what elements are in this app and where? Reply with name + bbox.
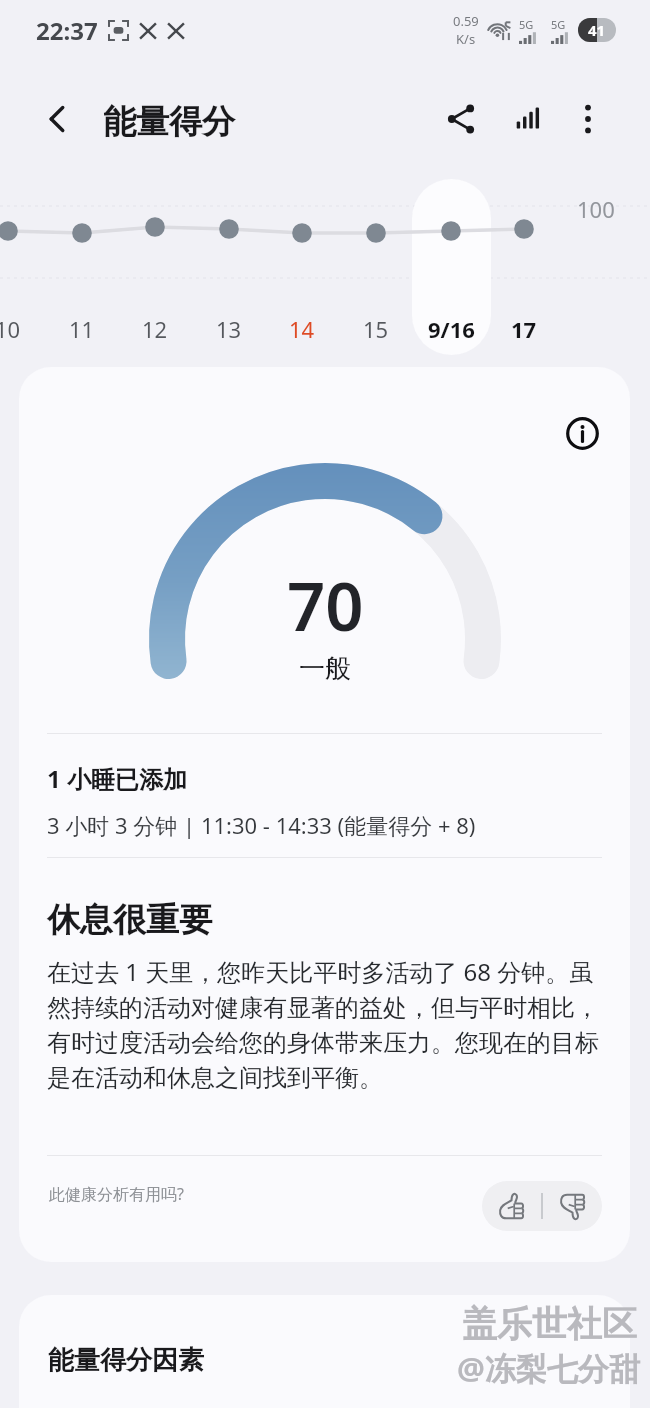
- staticText: 在过去 1 天里，您昨天比平时多活动了 68 分钟。虽 然持续的活动对健康有显著…: [47, 955, 630, 1093]
- staticText: 9/16: [428, 314, 475, 344]
- button[interactable]: Thumbs down, not helpful: [543, 1181, 602, 1231]
- staticText: 5G: [519, 17, 534, 32]
- staticText: 10: [0, 314, 21, 344]
- staticText: 41: [588, 20, 606, 40]
- button[interactable]: [412, 179, 491, 355]
- staticText: 70: [287, 559, 364, 650]
- button[interactable]: 11: [48, 310, 116, 348]
- staticText: 休息很重要: [47, 899, 212, 941]
- staticText: 14: [289, 314, 315, 344]
- staticText: 13: [216, 314, 242, 344]
- button[interactable]: More options: [563, 94, 613, 144]
- staticText: 能量得分: [103, 101, 235, 143]
- staticText: 一般: [299, 652, 351, 685]
- button[interactable]: 13: [195, 310, 263, 348]
- button[interactable]: Info: [560, 411, 604, 455]
- button[interactable]: Share: [436, 94, 486, 144]
- staticText: 12: [142, 314, 168, 344]
- staticText: 能量得分因素: [48, 1344, 204, 1377]
- staticText: 100: [577, 194, 615, 224]
- staticText: 17: [511, 314, 537, 344]
- staticText: 5G: [551, 17, 566, 32]
- button[interactable]: 10: [0, 310, 42, 348]
- button[interactable]: 17: [490, 310, 558, 348]
- button[interactable]: 能量得分因素: [19, 1295, 630, 1408]
- button[interactable]: Thumbs up, helpful: [482, 1181, 541, 1231]
- button[interactable]: 15: [342, 310, 410, 348]
- button[interactable]: 12: [121, 310, 189, 348]
- staticText: 盖乐世社区: [462, 1302, 637, 1346]
- staticText: K/s: [456, 30, 476, 48]
- staticText: 0.59: [453, 12, 479, 30]
- staticText: 3 小时 3 分钟 | 11:30 - 14:33 (能量得分 + 8): [47, 810, 476, 840]
- staticText: 15: [363, 314, 389, 344]
- button[interactable]: 14: [268, 310, 336, 348]
- staticText: 22:37: [36, 14, 98, 47]
- button[interactable]: Chart: [504, 94, 554, 144]
- staticText: 1 小睡已添加: [47, 762, 187, 795]
- staticText: @冻梨七分甜: [457, 1347, 640, 1389]
- staticText: 此健康分析有用吗?: [49, 1183, 184, 1205]
- button[interactable]: 9/16: [417, 310, 485, 348]
- button[interactable]: Back: [34, 95, 82, 143]
- staticText: 11: [69, 314, 95, 344]
